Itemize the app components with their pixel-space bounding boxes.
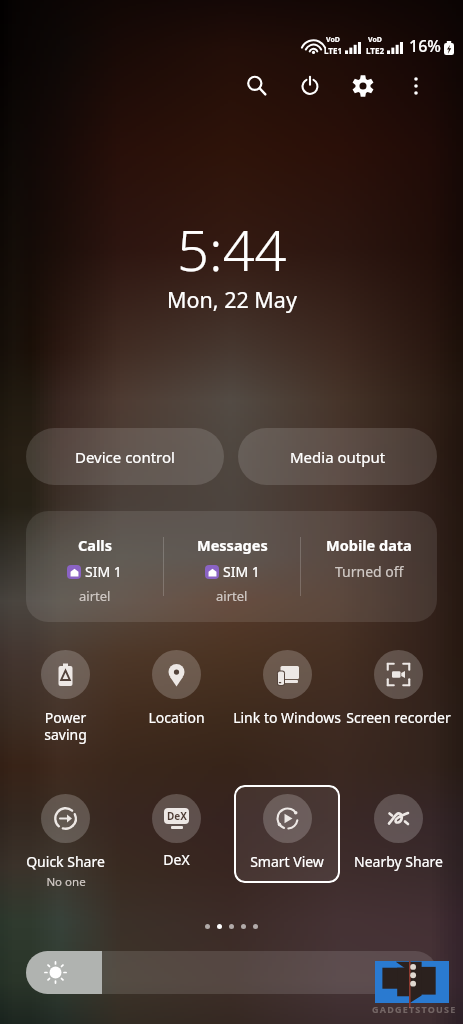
staticText: Media output	[290, 447, 386, 467]
button[interactable]: Device control	[26, 428, 224, 485]
button[interactable]: Quick Share	[7, 785, 123, 910]
button[interactable]: More options	[395, 65, 437, 107]
button[interactable]: Link to Windows	[229, 641, 345, 766]
button[interactable]: Power saving	[7, 641, 123, 766]
button[interactable]: Nearby Share	[340, 785, 456, 910]
staticText: DeX	[163, 850, 190, 869]
staticText: 16%	[409, 35, 441, 57]
button[interactable]: Media output	[238, 428, 437, 485]
staticText: SIM 1	[223, 562, 260, 581]
staticText: Device control	[75, 447, 175, 467]
staticText: GADGETSTOUSE	[372, 1003, 457, 1015]
staticText: Location	[148, 708, 205, 727]
staticText: Mobile data	[326, 535, 412, 555]
button[interactable]: Messages	[164, 511, 300, 622]
button[interactable]: Smart View	[229, 785, 345, 910]
staticText: Messages	[197, 535, 268, 555]
staticText: Mon, 22 May	[167, 285, 297, 314]
staticText: Power saving	[44, 708, 87, 744]
staticText: Turned off	[335, 562, 404, 581]
button[interactable]: Calls	[26, 511, 163, 622]
staticText: Smart View	[250, 852, 324, 871]
staticText: 5:44	[177, 211, 287, 287]
staticText: Link to Windows	[233, 708, 341, 727]
staticText: Calls	[78, 535, 112, 555]
button[interactable]: Brightness	[26, 951, 437, 994]
button[interactable]: Location	[118, 641, 234, 766]
staticText: DeX	[167, 809, 187, 823]
staticText: LTE1	[324, 45, 342, 56]
staticText: airtel	[216, 587, 248, 605]
staticText: Quick Share	[26, 852, 105, 871]
staticText: SIM 1	[85, 562, 122, 581]
staticText: airtel	[79, 587, 111, 605]
staticText: LTE2	[366, 45, 384, 56]
staticText: Nearby Share	[354, 852, 443, 871]
button[interactable]: Screen recorder	[340, 641, 456, 766]
staticText: Screen recorder	[346, 708, 451, 727]
button[interactable]: Settings	[342, 65, 384, 107]
button[interactable]: DeX	[118, 785, 234, 910]
button[interactable]: Power off	[289, 65, 331, 107]
staticText: VoD	[368, 35, 382, 45]
button[interactable]: Search	[236, 65, 278, 107]
button[interactable]: Mobile data	[301, 511, 437, 622]
staticText: VoD	[326, 35, 340, 45]
staticText: No one	[46, 874, 86, 890]
